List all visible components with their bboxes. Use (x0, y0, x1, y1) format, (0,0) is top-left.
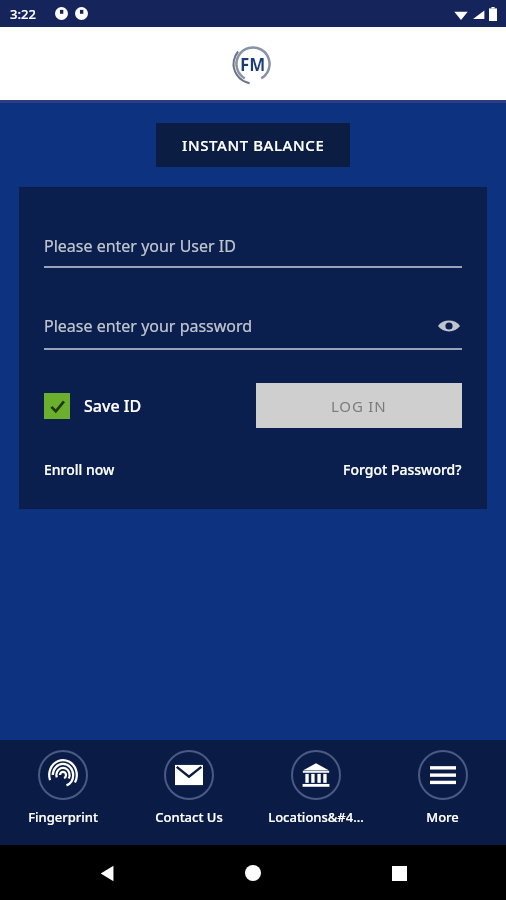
staticText: Please enter your User ID (44, 235, 462, 257)
other: Locations and ATMs (302, 761, 330, 789)
staticText: Save ID (84, 395, 142, 417)
button[interactable]: More (379, 740, 506, 826)
button[interactable]: INSTANT BALANCE (156, 123, 350, 167)
button[interactable]: Please enter your User ID (44, 235, 462, 268)
staticText: Locations&#4... (268, 808, 364, 826)
button[interactable]: Contact Us (126, 740, 252, 826)
button[interactable]: Enroll now (44, 460, 115, 479)
button[interactable]: Home (238, 858, 268, 888)
other: Fingerprint login (48, 760, 78, 790)
staticText: Fingerprint (28, 808, 98, 826)
other: Contact Us (175, 761, 203, 789)
other: More (430, 762, 456, 788)
staticText: LOG IN (331, 396, 387, 416)
other: Show password (436, 313, 462, 339)
button[interactable]: Locations and ATMs (252, 740, 379, 826)
staticText: INSTANT BALANCE (182, 135, 325, 155)
staticText: FM (240, 53, 266, 76)
button[interactable]: Forgot Password? (343, 460, 462, 479)
button[interactable]: Please enter your password (44, 313, 462, 350)
button[interactable]: Recent apps (384, 858, 414, 888)
button[interactable]: Save ID (44, 393, 142, 419)
button[interactable]: LOG IN (256, 383, 462, 428)
staticText: 3:22 (10, 5, 36, 23)
staticText: More (426, 808, 459, 826)
staticText: Please enter your password (44, 315, 436, 337)
button[interactable]: FM bank logo (230, 41, 276, 87)
button[interactable]: Back (92, 858, 122, 888)
staticText: Contact Us (155, 808, 223, 826)
button[interactable]: Fingerprint login (0, 740, 126, 826)
